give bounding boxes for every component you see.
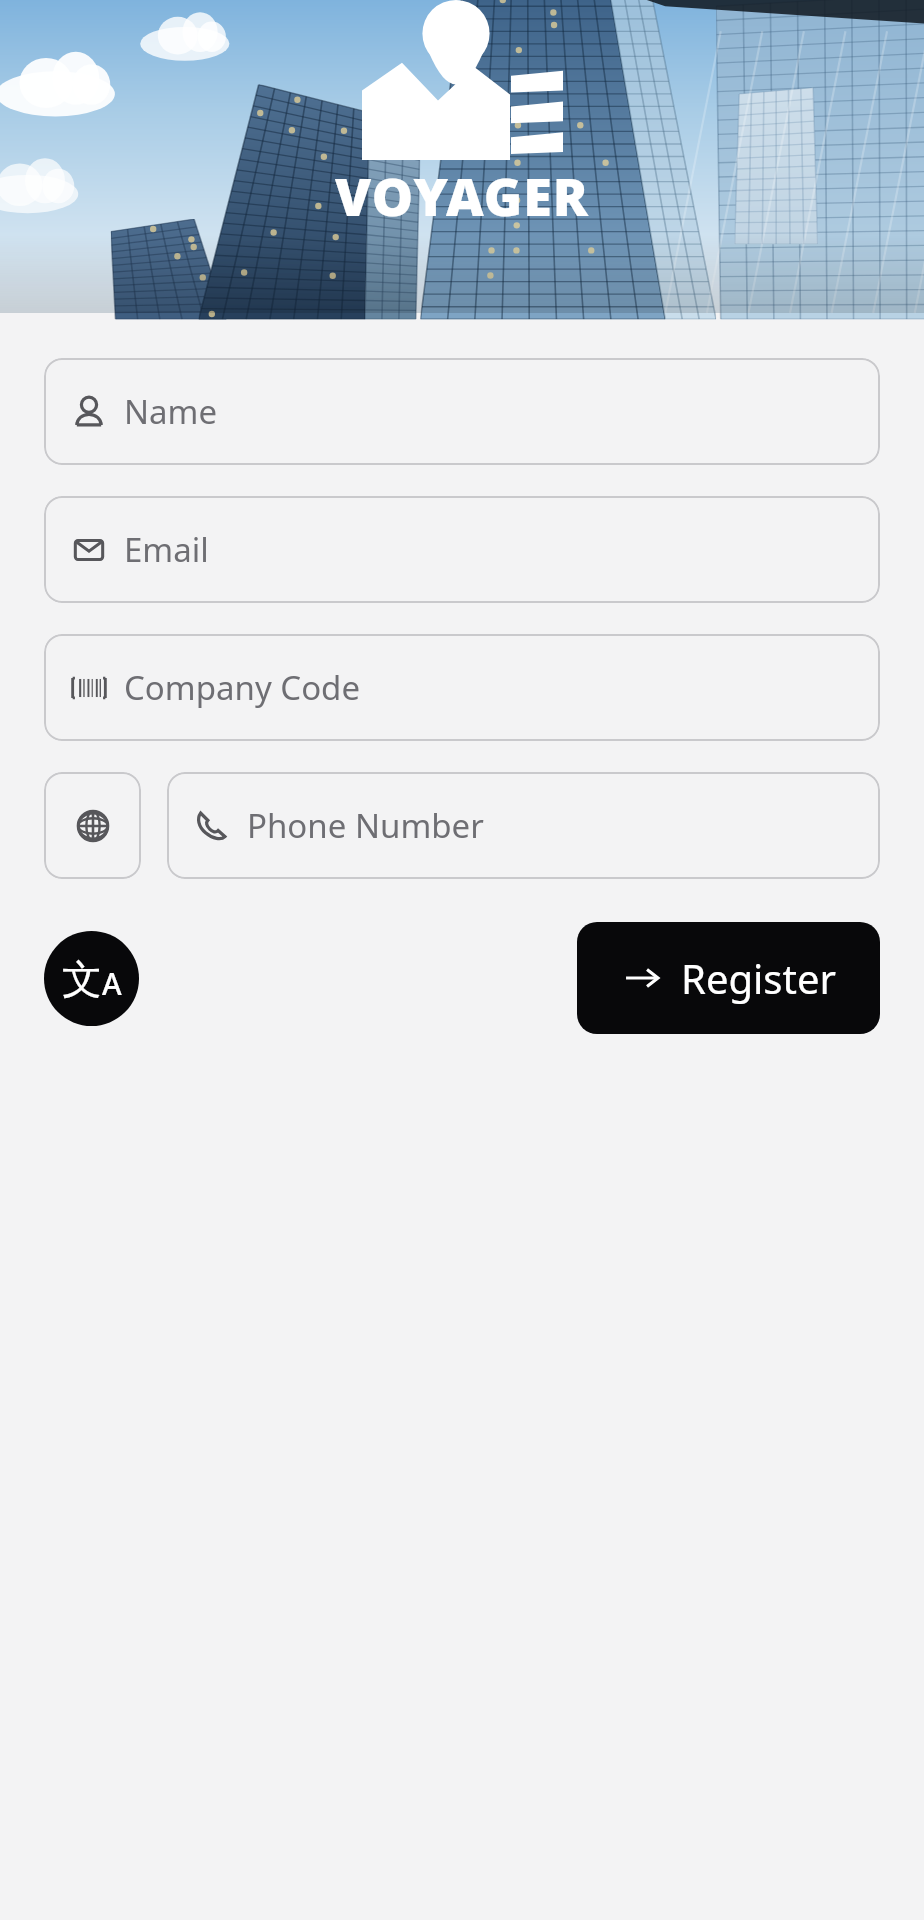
staticText: A bbox=[102, 963, 122, 1004]
staticText: Phone Number bbox=[247, 803, 484, 848]
button[interactable]: Email bbox=[44, 496, 880, 603]
staticText: Name bbox=[124, 389, 218, 434]
staticText: Email bbox=[124, 527, 209, 572]
button[interactable]: Change language bbox=[44, 931, 139, 1026]
staticText: Company Code bbox=[124, 665, 361, 710]
button[interactable]: Company Code bbox=[44, 634, 880, 741]
button[interactable]: Name bbox=[44, 358, 880, 465]
staticText: 文 bbox=[62, 954, 102, 1004]
button[interactable]: Register bbox=[577, 922, 880, 1034]
button[interactable]: Phone Number bbox=[167, 772, 880, 879]
staticText: VOYAGER bbox=[335, 160, 589, 231]
button[interactable]: Select country code bbox=[44, 772, 141, 879]
staticText: Register bbox=[681, 951, 837, 1005]
